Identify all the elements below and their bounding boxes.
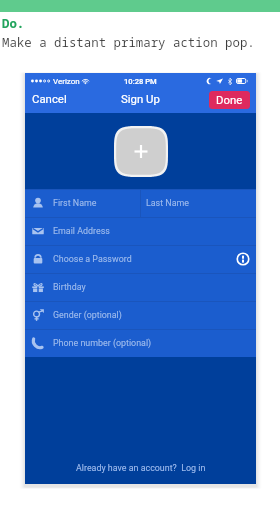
button[interactable]: Choose a Password [25,245,256,273]
staticText: Make a distant primary action pop. [2,34,255,51]
staticText: Gender (optional) [53,310,122,320]
staticText: Do. [2,15,25,32]
button[interactable]: Email Address [25,217,256,245]
staticText: Sign Up [121,92,160,105]
button[interactable]: Gender (optional) [25,301,256,329]
staticText: Last Name [146,198,190,208]
staticText: First Name [53,198,97,208]
button[interactable]: Already have an account? Log in [70,460,212,476]
button[interactable]: Cancel [25,88,74,109]
staticText: Phone number (optional) [53,338,152,348]
button[interactable]: Done [209,91,250,109]
button[interactable]: First Name [25,189,140,217]
staticText: Already have an account? Log in [76,463,206,473]
button[interactable]: Phone number (optional) [25,329,256,357]
button[interactable]: Birthday [25,273,256,301]
staticText: Verizon [53,77,80,86]
staticText: Done [216,93,243,106]
button[interactable]: Add profile photo [113,125,169,178]
staticText: 10:28 PM [124,77,157,86]
staticText: Birthday [53,282,86,292]
staticText: Cancel [32,92,67,105]
button[interactable]: Last Name [141,189,256,217]
staticText: Email Address [53,226,110,236]
staticText: Choose a Password [53,254,132,264]
